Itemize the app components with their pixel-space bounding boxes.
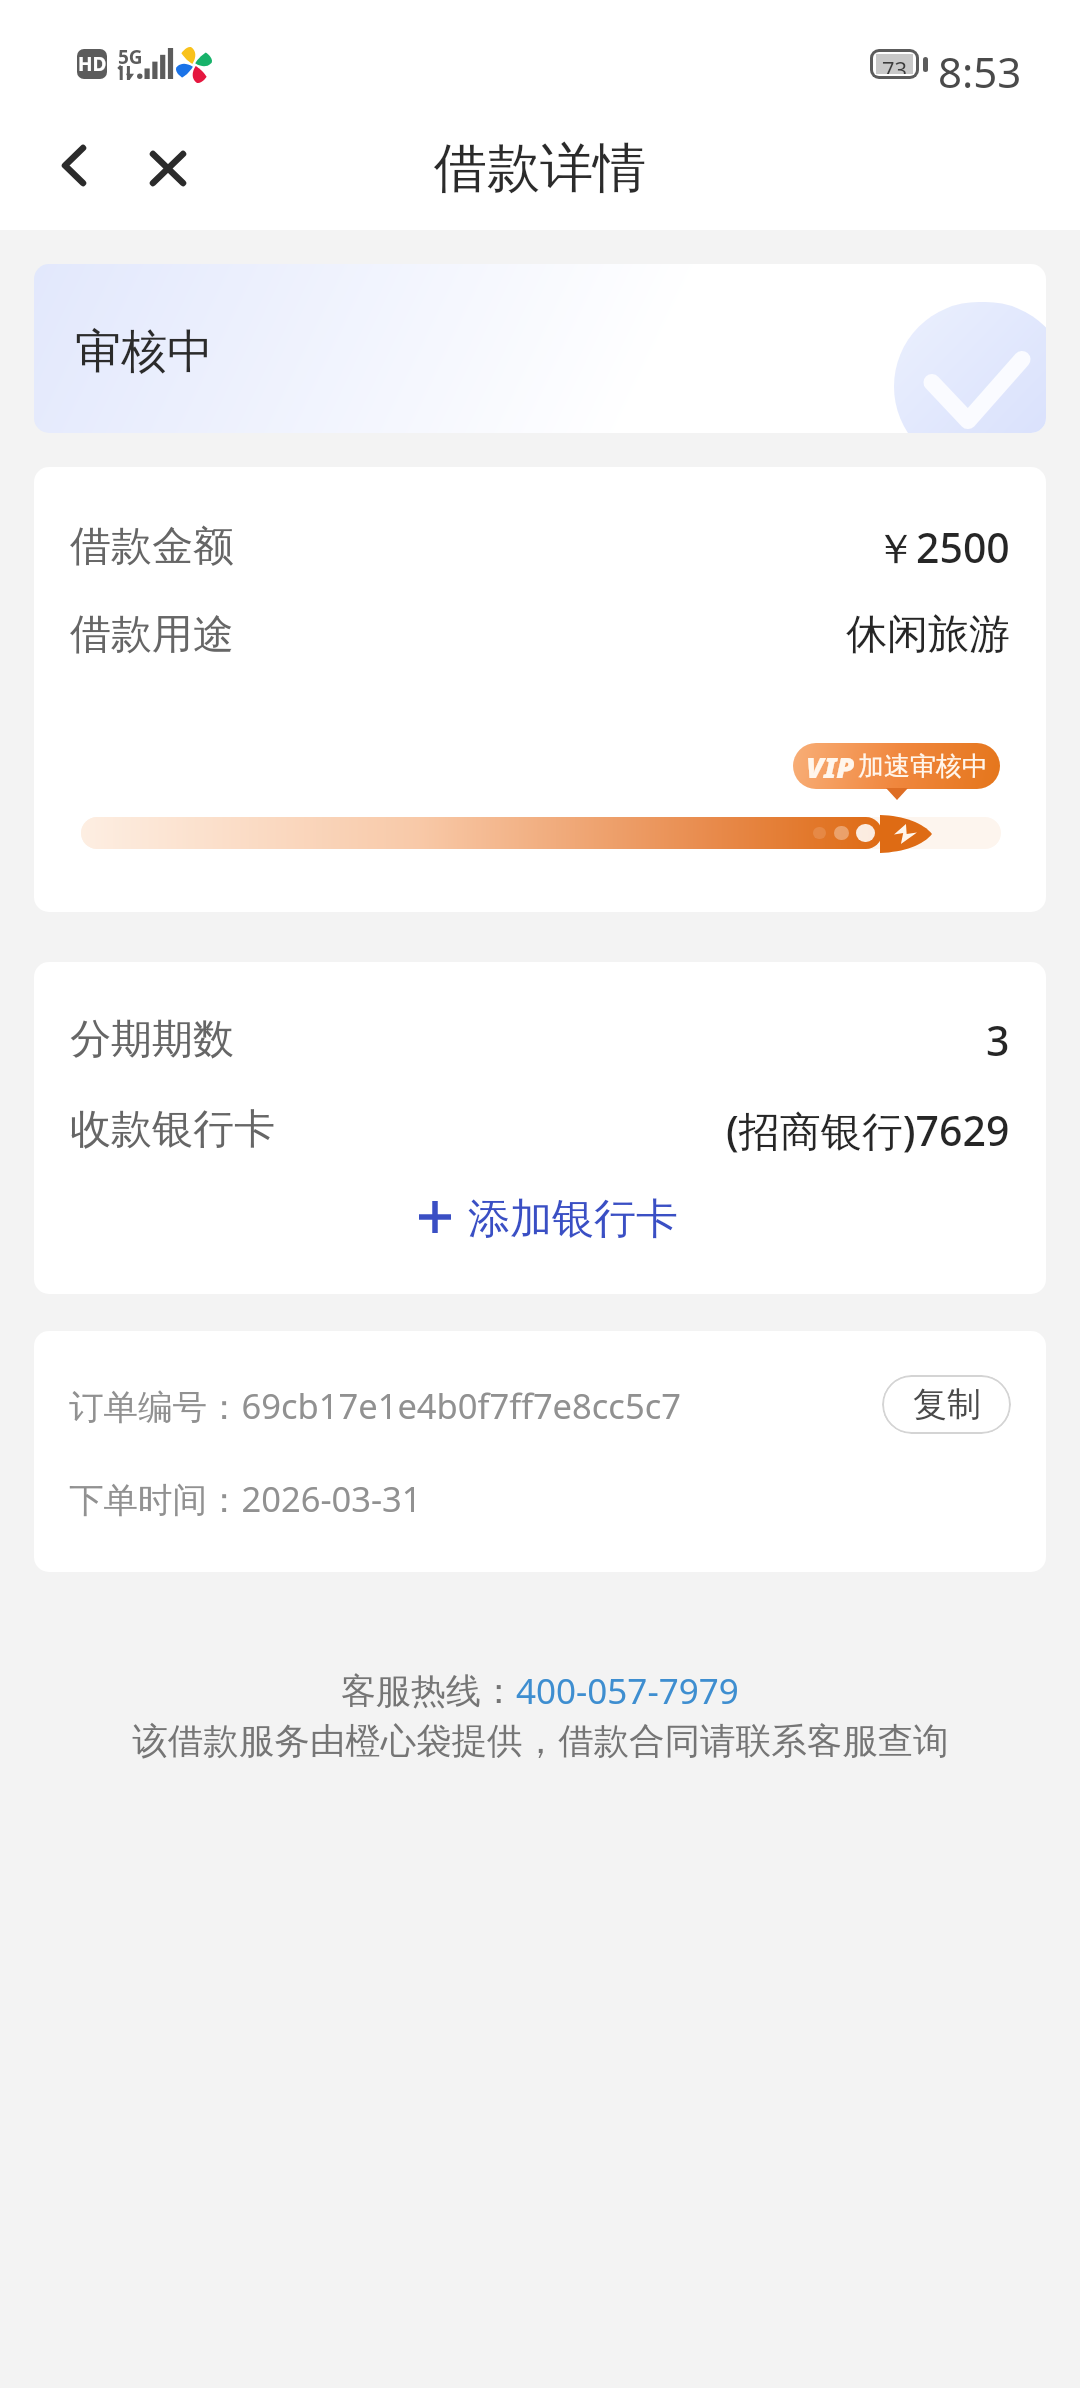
staticText: 3 xyxy=(986,1012,1010,1068)
staticText: 分期期数 xyxy=(70,1014,234,1066)
staticText: 该借款服务由橙心袋提供，借款合同请联系客服查询 xyxy=(132,1719,949,1764)
staticText: 8:53 xyxy=(938,43,1022,100)
staticText: 收款银行卡 xyxy=(70,1104,275,1156)
staticText: 下单时间：2026-03-31 xyxy=(69,1475,422,1522)
staticText: ￥2500 xyxy=(875,519,1010,575)
staticText: 借款详情 xyxy=(434,135,646,202)
staticText: 借款用途 xyxy=(70,609,234,661)
staticText: 加速审核中 xyxy=(858,750,988,783)
button[interactable]: Back xyxy=(24,115,124,215)
button[interactable]: 添加银行卡 xyxy=(42,1173,1046,1261)
staticText: (招商银行)7629 xyxy=(726,1102,1010,1158)
staticText: 审核中 xyxy=(75,323,213,381)
staticText: 5G xyxy=(118,44,143,70)
button[interactable]: 复制 xyxy=(882,1375,1011,1434)
staticText: 休闲旅游 xyxy=(846,609,1010,661)
staticText: HD xyxy=(78,51,107,77)
button[interactable]: Close xyxy=(118,118,218,218)
staticText: VIP xyxy=(806,747,855,786)
staticText: 借款金额 xyxy=(70,521,234,573)
staticText: 添加银行卡 xyxy=(468,1193,678,1246)
button[interactable]: 400-057-7979 xyxy=(516,1667,739,1715)
staticText: 订单编号：69cb17e1e4b0f7ff7e8cc5c7 xyxy=(69,1382,681,1429)
staticText: 73 xyxy=(882,54,908,74)
staticText: 客服热线： xyxy=(341,1669,516,1713)
staticText: 复制 xyxy=(913,1383,981,1426)
